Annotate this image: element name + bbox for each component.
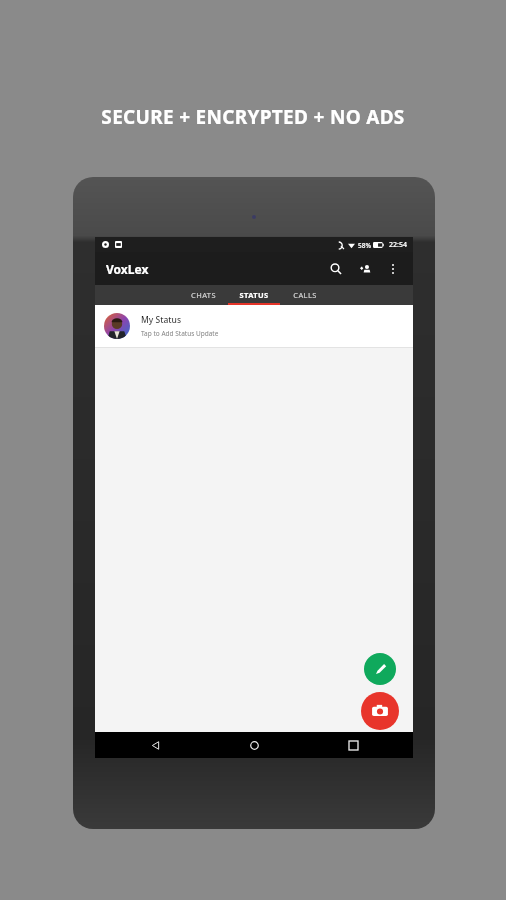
button[interactable]: My Status	[95, 305, 413, 347]
staticText: My Status	[141, 314, 182, 326]
staticText: SECURE + ENCRYPTED + NO ADS	[101, 104, 405, 130]
staticText: CALLS	[293, 290, 317, 300]
button[interactable]: CALLS	[280, 285, 330, 305]
button[interactable]: Recent apps	[341, 733, 365, 757]
staticText: STATUS	[239, 290, 269, 300]
staticText: 58%	[358, 241, 371, 250]
staticText: VoxLex	[106, 261, 149, 277]
button[interactable]: Search	[323, 256, 349, 282]
staticText: 22:54	[389, 240, 407, 250]
button[interactable]: Write status	[364, 653, 396, 685]
button[interactable]: More options	[381, 257, 405, 281]
button[interactable]: Camera	[361, 692, 399, 730]
button[interactable]: STATUS	[228, 285, 280, 305]
staticText: CHATS	[191, 290, 216, 300]
button[interactable]: Back	[143, 733, 167, 757]
staticText: Tap to Add Status Update	[141, 329, 219, 338]
button[interactable]: CHATS	[178, 285, 228, 305]
button[interactable]: Home	[242, 733, 266, 757]
button[interactable]: New group	[353, 256, 379, 282]
